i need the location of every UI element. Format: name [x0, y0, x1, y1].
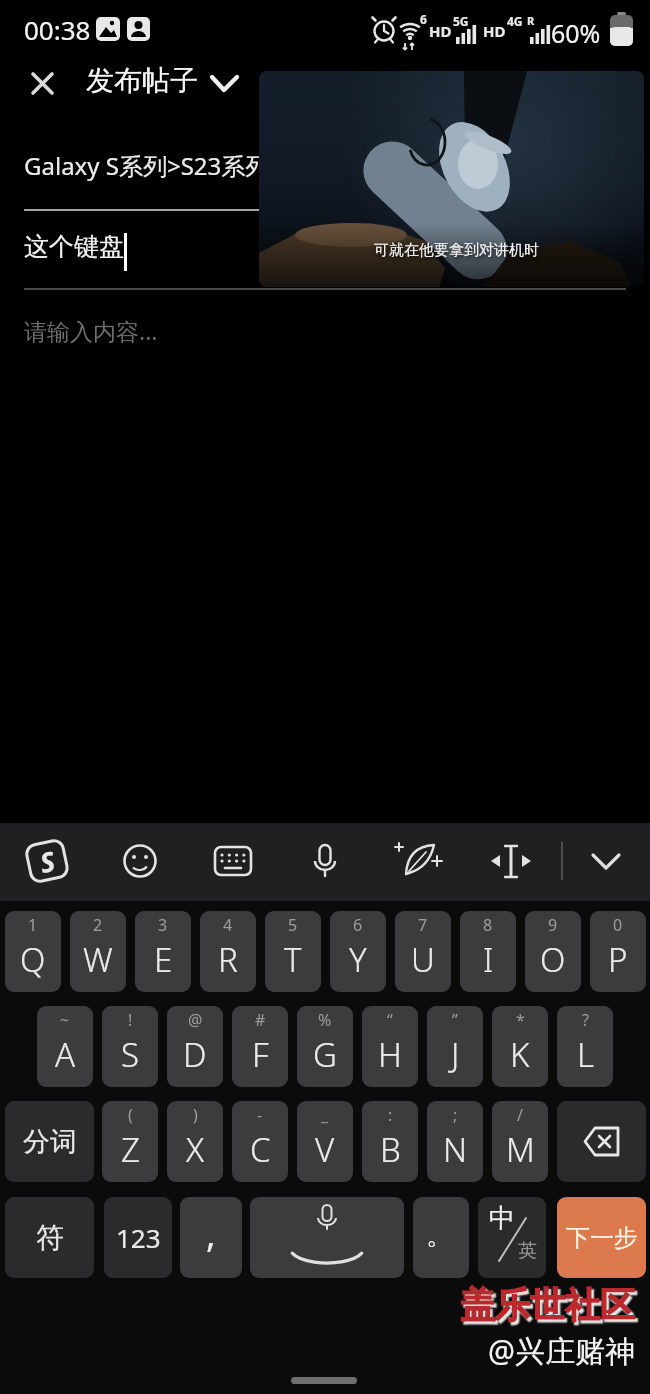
button[interactable]: : — [362, 1101, 418, 1182]
staticText: “ — [387, 1009, 393, 1031]
staticText: , — [206, 1209, 216, 1258]
staticText: 盖乐世社区 — [460, 1283, 635, 1327]
staticText: I — [483, 937, 494, 982]
staticText: V — [315, 1127, 335, 1172]
button[interactable]: _ — [297, 1101, 353, 1182]
button[interactable]: 9 — [525, 911, 581, 992]
staticText: T — [284, 937, 302, 982]
staticText: L — [577, 1032, 594, 1077]
staticText: C — [250, 1127, 271, 1172]
button[interactable] — [250, 1197, 404, 1278]
staticText: ” — [452, 1009, 458, 1031]
button[interactable]: 。 — [413, 1197, 469, 1278]
staticText: : — [388, 1104, 393, 1126]
staticText: J — [451, 1032, 460, 1077]
button[interactable]: 3 — [135, 911, 191, 992]
button[interactable] — [209, 837, 257, 885]
staticText: 4 — [223, 914, 233, 936]
button[interactable]: / — [492, 1101, 548, 1182]
staticText: F — [252, 1032, 269, 1077]
staticText: 123 — [116, 1220, 161, 1255]
button[interactable]: % — [297, 1006, 353, 1087]
staticText: HD — [483, 21, 506, 41]
button[interactable]: ! — [102, 1006, 158, 1087]
button[interactable]: # — [232, 1006, 288, 1087]
button[interactable]: 8 — [460, 911, 516, 992]
staticText: 6 — [353, 914, 363, 936]
button[interactable]: 符 — [5, 1197, 94, 1278]
button[interactable]: 4 — [200, 911, 256, 992]
staticText: 8 — [483, 914, 493, 936]
button[interactable] — [487, 837, 535, 885]
staticText: ) — [193, 1104, 198, 1126]
staticText: 英 — [518, 1239, 537, 1263]
staticText: ; — [453, 1104, 458, 1126]
staticText: G — [313, 1032, 337, 1077]
staticText: R — [527, 13, 535, 28]
staticText: - — [257, 1104, 263, 1126]
staticText: M — [506, 1127, 535, 1172]
button[interactable]: ) — [167, 1101, 223, 1182]
staticText: 发布帖子 — [86, 63, 198, 98]
staticText: ! — [128, 1009, 133, 1031]
staticText: 5G — [453, 13, 469, 29]
staticText: B — [380, 1127, 401, 1172]
button[interactable] — [557, 1101, 646, 1182]
staticText: Z — [121, 1127, 140, 1172]
button[interactable]: 下一步 — [557, 1197, 646, 1278]
button[interactable]: 0 — [590, 911, 646, 992]
button[interactable]: 6 — [330, 911, 386, 992]
staticText: S — [121, 1032, 140, 1077]
button[interactable]: ” — [427, 1006, 483, 1087]
staticText: # — [255, 1009, 266, 1031]
staticText: ? — [582, 1009, 589, 1031]
button[interactable]: ~ — [37, 1006, 93, 1087]
staticText: % — [318, 1009, 332, 1031]
staticText: N — [443, 1127, 468, 1172]
staticText: X — [186, 1127, 205, 1172]
staticText: U — [411, 937, 435, 982]
button[interactable]: 5 — [265, 911, 321, 992]
staticText: 7 — [418, 914, 428, 936]
button[interactable]: S — [22, 836, 72, 886]
staticText: Y — [349, 937, 367, 982]
button[interactable]: 可就在他要拿到对讲机时 — [259, 71, 644, 287]
button[interactable]: @ — [167, 1006, 223, 1087]
staticText: R — [218, 937, 238, 982]
staticText: 。 — [426, 1219, 452, 1252]
staticText: 请输入内容... — [24, 315, 158, 346]
button[interactable]: ( — [102, 1101, 158, 1182]
button[interactable]: 发布帖子 — [86, 63, 198, 98]
staticText: 可就在他要拿到对讲机时 — [374, 241, 539, 260]
button[interactable]: 2 — [70, 911, 126, 992]
button[interactable] — [582, 837, 630, 885]
button[interactable] — [396, 837, 444, 885]
button[interactable] — [301, 837, 349, 885]
staticText: Q — [20, 937, 46, 982]
staticText: 符 — [36, 1220, 64, 1255]
staticText: W — [83, 937, 113, 982]
button[interactable]: 中 — [478, 1197, 546, 1278]
staticText: 中 — [489, 1202, 515, 1235]
button[interactable]: - — [232, 1101, 288, 1182]
staticText: / — [517, 1104, 523, 1126]
button[interactable]: , — [180, 1197, 242, 1278]
staticText: A — [55, 1032, 76, 1077]
button[interactable]: Galaxy S系列>S23系列 — [0, 142, 400, 198]
button[interactable]: ; — [427, 1101, 483, 1182]
staticText: ~ — [60, 1009, 70, 1031]
staticText: 2 — [93, 914, 103, 936]
button[interactable]: “ — [362, 1006, 418, 1087]
button[interactable]: 123 — [104, 1197, 172, 1278]
button[interactable] — [116, 837, 164, 885]
staticText: 0 — [613, 914, 623, 936]
button[interactable]: 分词 — [5, 1101, 94, 1182]
staticText: H — [378, 1032, 402, 1077]
button[interactable]: ? — [557, 1006, 613, 1087]
button[interactable]: 7 — [395, 911, 451, 992]
staticText: 9 — [548, 914, 558, 936]
button[interactable]: * — [492, 1006, 548, 1087]
staticText: _ — [321, 1104, 329, 1126]
button[interactable] — [20, 61, 64, 105]
button[interactable]: 1 — [5, 911, 61, 992]
